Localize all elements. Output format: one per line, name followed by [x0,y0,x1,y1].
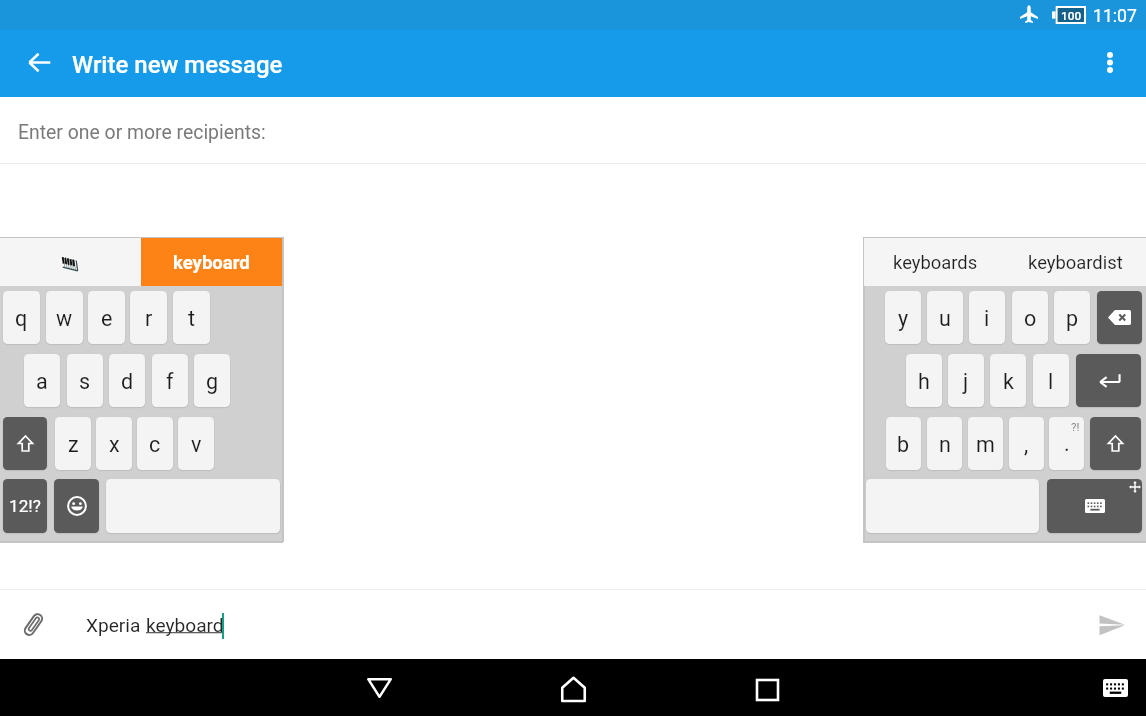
staticText: v [191,432,202,457]
button[interactable]: Home [549,665,597,713]
staticText: o [1024,306,1037,331]
button[interactable]: i [969,291,1005,344]
button[interactable]: v [178,417,214,470]
button[interactable]: Navigate up [15,38,63,86]
staticText: keyboard [146,614,224,636]
staticText: f [166,369,174,394]
button[interactable]: Recent apps [743,666,791,714]
staticText: l [1048,369,1054,394]
staticText: s [79,369,91,394]
button[interactable]: t [173,291,210,344]
button[interactable]: l [1033,354,1069,407]
button[interactable]: k [990,354,1026,407]
button[interactable]: j [948,354,984,407]
button[interactable]: m [968,417,1003,470]
button[interactable]: y [885,291,921,344]
button[interactable]: Emoji [54,479,99,533]
button[interactable]: x [96,417,132,470]
staticText: w [56,306,73,331]
button[interactable]: u [927,291,963,344]
staticText: z [68,432,79,457]
button[interactable]: More options [1086,38,1134,86]
staticText: d [121,369,134,394]
staticText: . [1064,431,1070,456]
staticText: t [188,306,196,331]
staticText: keyboard [173,252,250,274]
button[interactable]: Enter one or more recipients: [0,97,1146,163]
button[interactable]: a [24,354,60,407]
staticText: q [15,306,28,331]
staticText: keyboardist [1028,252,1123,274]
staticText: b [897,432,910,457]
button[interactable]: Switch keyboard [1047,479,1142,533]
button[interactable]: f [152,354,188,407]
button[interactable]: Write new message [72,51,283,79]
button[interactable]: Send [1090,603,1134,647]
staticText: e [101,306,113,331]
staticText: a [36,369,48,394]
button[interactable]: c [137,417,173,470]
staticText: c [149,432,161,457]
button[interactable]: g [194,354,230,407]
button[interactable]: Attach file [13,604,57,648]
button[interactable]: Shift [3,417,47,470]
button[interactable]: keyboard [141,238,282,286]
staticText: j [963,369,969,394]
staticText: , [1024,432,1029,457]
staticText: h [918,369,930,394]
button[interactable]: keyboardist [1020,238,1131,286]
button[interactable]: e [88,291,125,344]
staticText: Xperia [86,614,146,636]
button[interactable]: w [46,291,83,344]
staticText: 100 [1061,9,1082,23]
staticText: 11:07 [1093,6,1137,27]
staticText: k [1003,369,1014,394]
button[interactable]: r [130,291,167,344]
button[interactable]: Backspace [1097,291,1142,344]
button[interactable]: h [906,354,942,407]
staticText: keyboards [893,252,978,274]
staticText: i [984,306,990,331]
staticText: x [109,432,120,457]
button[interactable]: s [67,354,103,407]
button[interactable]: Shift [1090,417,1141,470]
button[interactable]: Piano emoji suggestion [59,253,81,275]
staticText: Enter one or more recipients: [18,121,266,144]
button[interactable]: Switch keyboard [1093,666,1137,710]
button[interactable]: q [3,291,40,344]
button[interactable]: z [55,417,91,470]
button[interactable]: o [1012,291,1048,344]
button[interactable]: . [1049,417,1084,470]
staticText: n [939,432,951,457]
button[interactable]: Xperia [66,590,1082,659]
staticText: y [898,306,909,331]
staticText: p [1066,306,1079,331]
button[interactable]: Enter [1076,354,1141,407]
button[interactable]: , [1009,417,1044,470]
button[interactable]: d [109,354,145,407]
button[interactable]: Symbols [3,479,47,533]
button[interactable]: n [927,417,962,470]
staticText: g [206,369,219,394]
button[interactable]: keyboards [884,238,986,286]
staticText: 12!? [9,496,41,516]
button[interactable]: p [1054,291,1090,344]
button[interactable]: Back [355,664,403,712]
button[interactable]: b [886,417,921,470]
staticText: m [976,432,995,457]
staticText: ?! [1071,420,1080,433]
staticText: u [939,306,951,331]
staticText: r [145,306,153,331]
